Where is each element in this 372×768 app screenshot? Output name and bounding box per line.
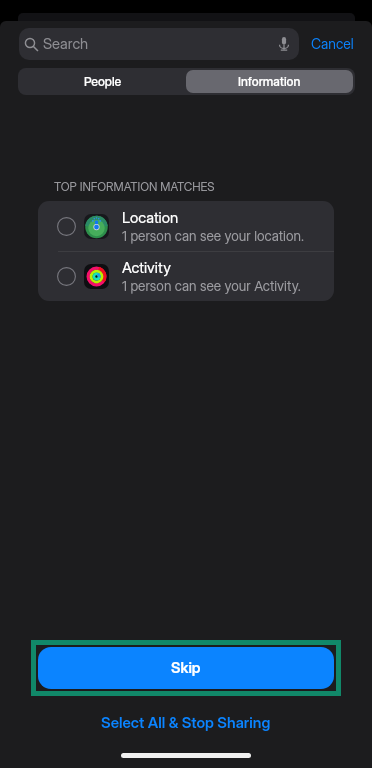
button[interactable]: Information (186, 70, 353, 93)
button[interactable]: Cancel (305, 31, 360, 56)
button[interactable]: Activity (38, 252, 334, 301)
staticText: Select All & Stop Sharing (101, 713, 271, 731)
staticText: Search (43, 35, 89, 53)
staticText: Activity (122, 258, 171, 276)
staticText: TOP INFORMATION MATCHES (54, 180, 215, 194)
staticText: Skip (171, 659, 201, 677)
button[interactable]: Select All & Stop Sharing (91, 709, 281, 735)
staticText: 1 person can see your Activity. (122, 278, 301, 295)
staticText: Information (238, 74, 301, 89)
staticText: Cancel (311, 35, 354, 52)
button[interactable]: Location (38, 201, 334, 251)
staticText: People (84, 74, 122, 89)
button[interactable]: People (20, 70, 186, 93)
other: Voice search (276, 36, 292, 52)
staticText: 1 person can see your location. (122, 228, 304, 245)
button[interactable]: Search (19, 28, 299, 60)
staticText: Location (122, 208, 179, 226)
button[interactable]: Skip (38, 647, 334, 689)
